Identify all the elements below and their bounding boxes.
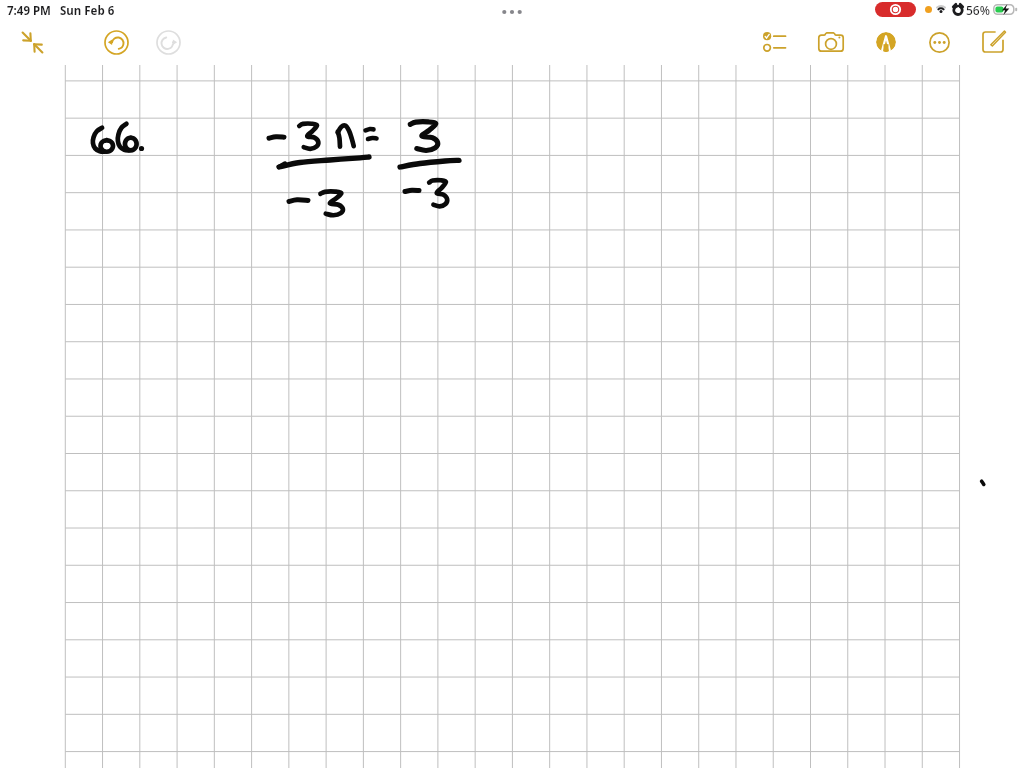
button[interactable]: Pen (867, 23, 905, 61)
button[interactable]: More (920, 23, 958, 61)
button[interactable]: Checklist (755, 23, 793, 61)
button[interactable]: Note page (0, 0, 1024, 768)
staticText: Sun Feb 6 (60, 3, 115, 19)
button[interactable]: Compose (974, 23, 1012, 61)
button[interactable]: Camera (812, 23, 850, 61)
staticText: 56% (966, 2, 990, 18)
button[interactable]: Redo (149, 23, 187, 61)
staticText: 7:49 PM (7, 3, 51, 19)
button[interactable]: Undo (97, 23, 135, 61)
button[interactable]: Collapse (13, 23, 51, 61)
